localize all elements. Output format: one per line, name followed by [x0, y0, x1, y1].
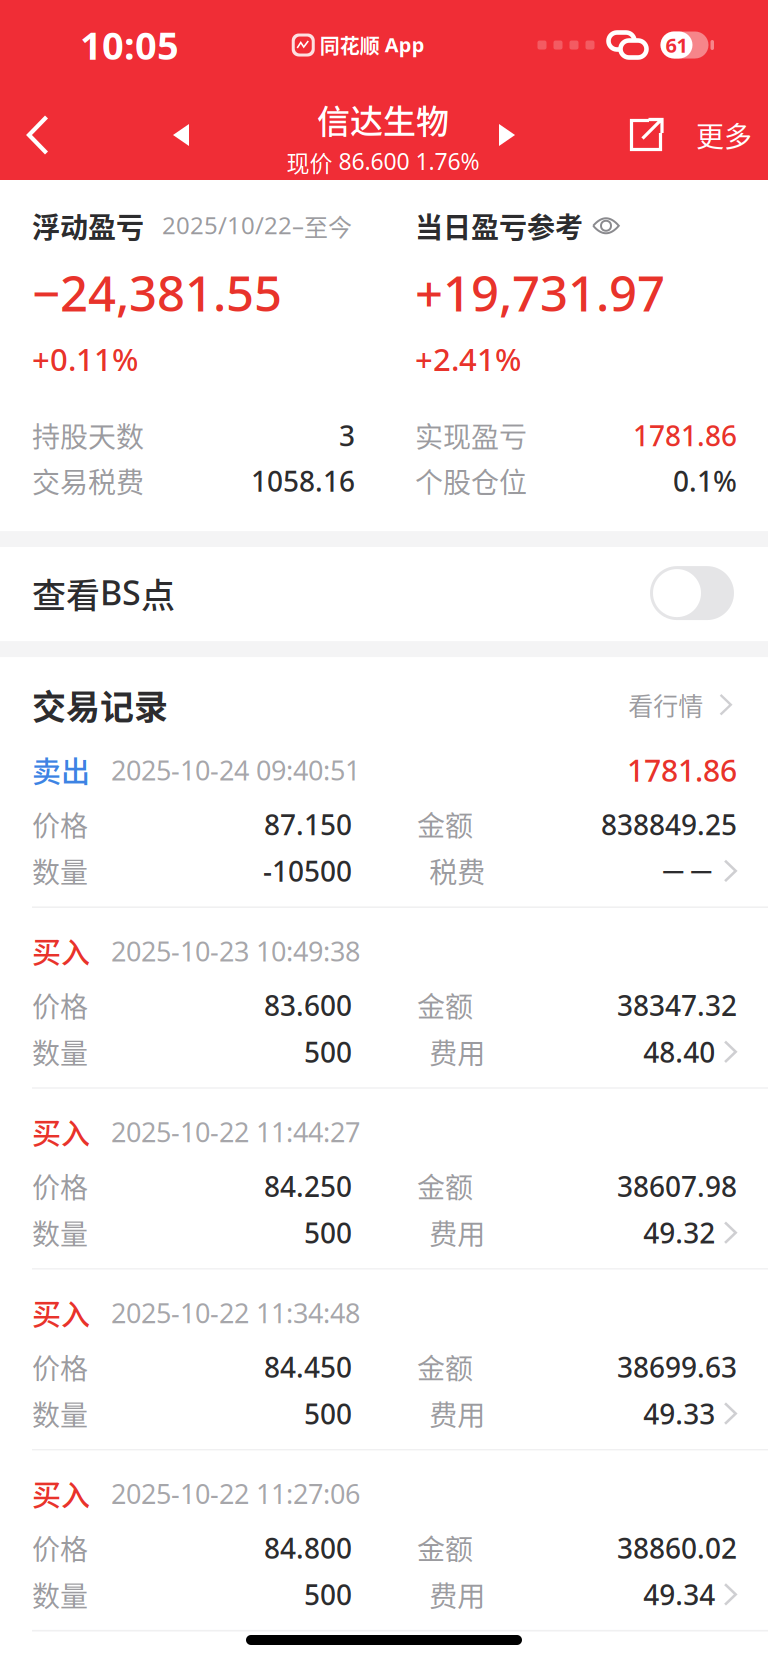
staticText: +0.11% — [32, 338, 138, 380]
staticText: 当日盈亏参考 — [415, 205, 583, 246]
staticText: 500 — [304, 1575, 352, 1613]
staticText: 数量 — [32, 851, 88, 891]
staticText: 费用 — [429, 1031, 485, 1072]
staticText: 3 — [339, 416, 355, 454]
staticText: 2025-10-22 11:44:27 — [111, 1113, 360, 1150]
staticText: 500 — [304, 1033, 352, 1071]
staticText: 金额 — [417, 1528, 473, 1568]
staticText: 费用 — [429, 1393, 485, 1434]
staticText: 金额 — [417, 1347, 473, 1387]
staticText: 交易记录 — [32, 680, 168, 729]
staticText: +2.41% — [415, 338, 521, 380]
staticText: 61 — [665, 31, 687, 59]
button[interactable]: 买入 — [0, 1089, 768, 1268]
button[interactable]: 交易记录 — [0, 657, 768, 727]
staticText: 2025-10-24 09:40:51 — [111, 752, 360, 788]
staticText: 个股仓位 — [415, 460, 527, 501]
staticText: 0.1% — [673, 462, 737, 500]
staticText: +19,731.97 — [415, 259, 665, 326]
staticText: 83.600 — [264, 986, 352, 1024]
staticText: 1781.86 — [633, 416, 737, 454]
staticText: 持股天数 — [32, 415, 144, 455]
staticText: 买入 — [32, 1111, 90, 1153]
button[interactable]: 查看BS点 — [0, 547, 768, 641]
staticText: 查看BS点 — [32, 568, 175, 618]
staticText: 84.800 — [264, 1529, 352, 1567]
staticText: 金额 — [417, 985, 473, 1025]
button[interactable]: 买入 — [0, 1451, 768, 1630]
staticText: 同花顺 App — [320, 30, 425, 59]
staticText: 38699.63 — [617, 1348, 737, 1386]
staticText: −24,381.55 — [32, 259, 282, 326]
staticText: －－ — [659, 851, 715, 891]
button[interactable]: 更多 — [680, 90, 768, 180]
staticText: 费用 — [429, 1212, 485, 1253]
staticText: 49.34 — [643, 1575, 715, 1613]
staticText: 价格 — [32, 1347, 88, 1387]
staticText: 实现盈亏 — [415, 415, 527, 455]
staticText: 浮动盈亏 — [32, 205, 144, 246]
staticText: 看行情 — [628, 687, 703, 723]
staticText: 金额 — [417, 804, 473, 845]
staticText: 2025/10/22–至今 — [162, 208, 352, 243]
staticText: 49.32 — [643, 1214, 715, 1252]
button[interactable]: Back — [0, 90, 76, 180]
staticText: 1058.16 — [251, 462, 355, 500]
button[interactable]: Share — [612, 90, 680, 180]
staticText: 38860.02 — [617, 1529, 737, 1567]
staticText: 500 — [304, 1394, 352, 1433]
staticText: 数量 — [32, 1212, 88, 1253]
staticText: -10500 — [263, 852, 352, 890]
staticText: 信达生物 — [317, 95, 449, 143]
staticText: 48.40 — [643, 1033, 715, 1071]
staticText: 更多 — [696, 115, 752, 155]
staticText: 买入 — [32, 930, 90, 972]
staticText: 84.250 — [264, 1167, 352, 1205]
staticText: 价格 — [32, 1528, 88, 1568]
staticText: 买入 — [32, 1473, 90, 1515]
staticText: 交易税费 — [32, 460, 144, 501]
button[interactable]: 买入 — [0, 1270, 768, 1449]
staticText: 87.150 — [264, 805, 352, 843]
staticText: 1781.86 — [627, 750, 737, 791]
button[interactable]: Previous stock — [155, 90, 207, 180]
button[interactable]: 买入 — [0, 908, 768, 1087]
staticText: 买入 — [32, 1292, 90, 1334]
staticText: 2025-10-22 11:34:48 — [111, 1294, 360, 1331]
staticText: 金额 — [417, 1166, 473, 1206]
staticText: 2025-10-22 11:27:06 — [111, 1475, 360, 1512]
staticText: 数量 — [32, 1574, 88, 1615]
staticText: 10:05 — [80, 19, 179, 71]
staticText: 38347.32 — [617, 986, 737, 1024]
staticText: 费用 — [429, 1574, 485, 1615]
staticText: 84.450 — [264, 1348, 352, 1386]
staticText: 税费 — [429, 851, 485, 891]
button[interactable]: 卖出 — [0, 727, 768, 906]
staticText: 38607.98 — [617, 1167, 737, 1205]
staticText: 卖出 — [32, 749, 90, 791]
staticText: 49.33 — [643, 1394, 715, 1433]
staticText: 2025-10-23 10:49:38 — [111, 933, 360, 969]
button[interactable]: Next stock — [481, 90, 533, 180]
staticText: 价格 — [32, 804, 88, 845]
staticText: 价格 — [32, 985, 88, 1025]
staticText: 价格 — [32, 1166, 88, 1206]
staticText: 现价 86.600 1.76% — [286, 145, 479, 178]
staticText: 数量 — [32, 1031, 88, 1072]
staticText: 500 — [304, 1214, 352, 1252]
staticText: 数量 — [32, 1393, 88, 1434]
staticText: 838849.25 — [601, 805, 737, 843]
